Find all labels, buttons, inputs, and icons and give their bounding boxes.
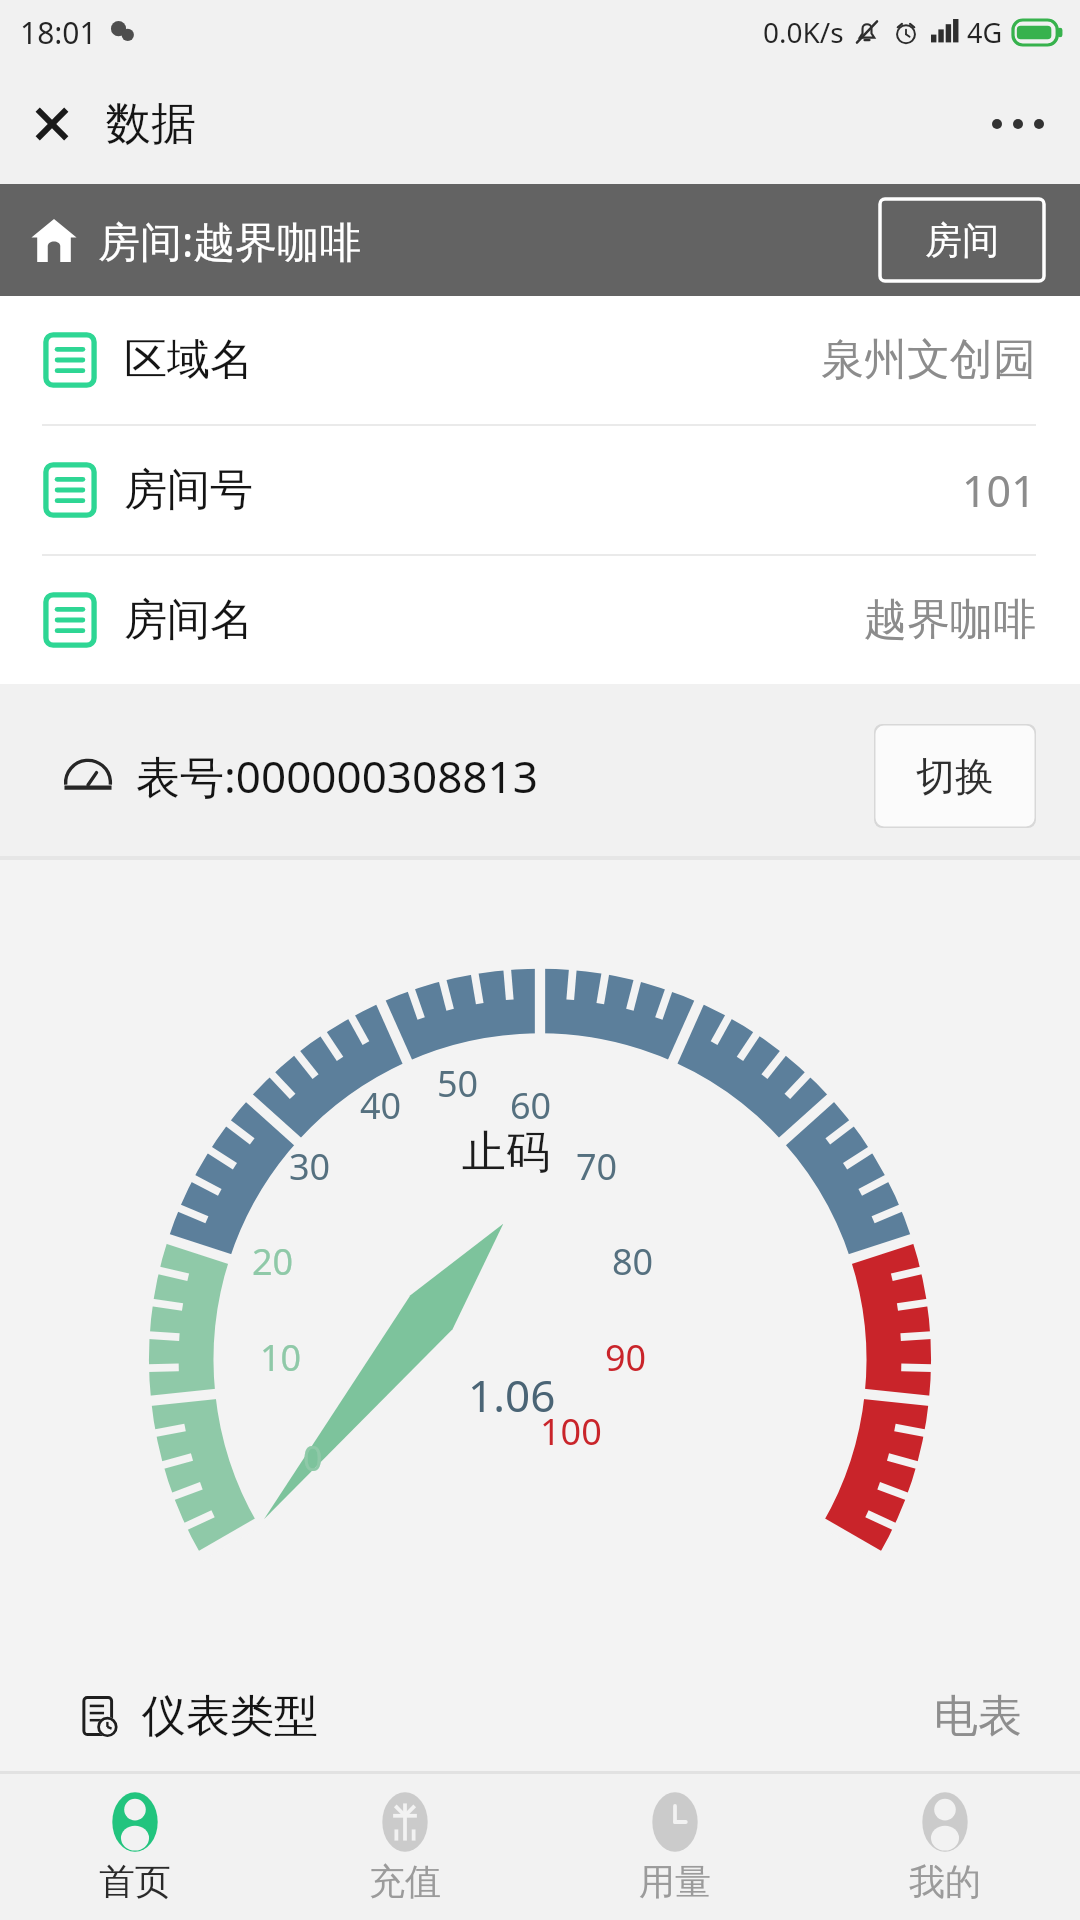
staticText: 10 [260, 1333, 302, 1382]
staticText: 房间名 [124, 593, 253, 647]
button[interactable]: 首页 [0, 1774, 270, 1920]
staticText: 充值 [369, 1859, 441, 1904]
staticText: 我的 [909, 1859, 981, 1904]
staticText: 4G [967, 14, 1003, 51]
button[interactable]: 房间 [880, 199, 1044, 281]
button[interactable]: 区域名 [0, 296, 1080, 426]
staticText: 20 [252, 1237, 294, 1286]
button[interactable]: 表号:000000308813 [0, 696, 1080, 856]
staticText: 房间:越界咖啡 [98, 212, 362, 269]
button[interactable]: 仪表类型 [0, 1661, 1080, 1771]
staticText: 100 [540, 1407, 602, 1456]
staticText: 房间 [925, 217, 999, 264]
staticText: 用量 [639, 1859, 711, 1904]
staticText: 切换 [916, 752, 994, 801]
staticText: 60 [510, 1081, 552, 1130]
staticText: 仪表类型 [142, 1689, 318, 1744]
staticText: 数据 [106, 96, 196, 153]
staticText: 101 [962, 461, 1036, 520]
staticText: 区域名 [124, 333, 253, 387]
staticText: 泉州文创园 [821, 333, 1036, 387]
staticText: 房间号 [124, 463, 253, 517]
button[interactable]: 充值 [270, 1774, 540, 1920]
button[interactable]: 房间名 [0, 556, 1080, 684]
staticText: 首页 [99, 1859, 171, 1904]
staticText: 70 [576, 1142, 618, 1191]
button[interactable]: 房间号 [0, 426, 1080, 556]
staticText: 0.0K/s [763, 13, 844, 51]
staticText: 1.06 [468, 1365, 556, 1425]
staticText: 30 [289, 1142, 331, 1191]
staticText: 表号:000000308813 [136, 746, 538, 806]
button[interactable]: 我的 [810, 1774, 1080, 1920]
button[interactable]: 切换 [874, 724, 1036, 828]
staticText: 50 [437, 1059, 479, 1108]
button[interactable]: 用量 [540, 1774, 810, 1920]
staticText: 80 [612, 1237, 654, 1286]
button[interactable]: Close [14, 86, 90, 162]
button[interactable]: More options [978, 84, 1058, 164]
staticText: 止码 [462, 1125, 550, 1180]
button[interactable]: 房间:越界咖啡 [0, 184, 1080, 296]
staticText: 0 [303, 1435, 323, 1481]
staticText: 40 [360, 1081, 402, 1130]
staticText: 18:01 [20, 12, 97, 53]
staticText: 电表 [934, 1689, 1022, 1744]
staticText: 90 [605, 1333, 647, 1382]
staticText: 越界咖啡 [864, 593, 1036, 647]
